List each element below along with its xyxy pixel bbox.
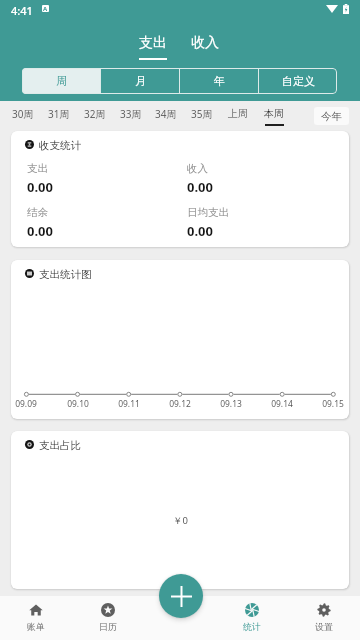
staticText: 09.11: [113, 398, 145, 410]
staticText: 30周: [12, 107, 34, 121]
staticText: 设置: [315, 621, 333, 632]
staticText: 本周: [264, 107, 284, 120]
button[interactable]: 34周: [155, 107, 177, 127]
button[interactable]: 日历: [72, 596, 144, 640]
staticText: 09.15: [317, 398, 349, 410]
staticText: 收支统计: [39, 139, 81, 152]
staticText: 月: [135, 74, 146, 88]
button[interactable]: 30周: [12, 107, 34, 127]
staticText: 31周: [48, 107, 70, 121]
button[interactable]: 月: [101, 68, 179, 94]
staticText: 09.13: [215, 398, 247, 410]
button[interactable]: 周: [22, 68, 100, 94]
staticText: 日均支出: [187, 206, 229, 219]
staticText: 支出: [27, 162, 48, 175]
staticText: 账单: [27, 621, 45, 632]
staticText: 4:41: [11, 3, 33, 18]
staticText: 统计: [243, 621, 261, 632]
staticText: 上周: [228, 107, 248, 120]
button[interactable]: 账单: [0, 596, 72, 640]
staticText: 0.00: [27, 178, 53, 196]
staticText: 支出统计图: [39, 268, 92, 281]
staticText: 结余: [27, 206, 48, 219]
staticText: 0.00: [187, 178, 213, 196]
button[interactable]: 年: [180, 68, 258, 94]
button[interactable]: 今年: [314, 107, 349, 125]
staticText: 收入: [187, 162, 208, 175]
button[interactable]: 支出: [136, 34, 170, 60]
staticText: 09.09: [11, 398, 42, 410]
button[interactable]: 31周: [48, 107, 70, 127]
staticText: 今年: [321, 110, 342, 123]
button[interactable]: 收支统计: [11, 131, 349, 247]
staticText: 34周: [155, 107, 177, 121]
staticText: 35周: [191, 107, 213, 121]
staticText: 0.00: [187, 222, 213, 240]
staticText: 自定义: [282, 74, 315, 88]
staticText: 0.00: [27, 222, 53, 240]
staticText: 收入: [191, 34, 219, 52]
button[interactable]: 收入: [188, 34, 222, 60]
button[interactable]: 35周: [191, 107, 213, 127]
staticText: 支出占比: [39, 439, 81, 452]
staticText: 32周: [84, 107, 106, 121]
button[interactable]: Add record: [159, 574, 203, 618]
staticText: 日历: [99, 621, 117, 632]
staticText: 周: [56, 74, 67, 88]
staticText: 年: [214, 74, 225, 88]
button[interactable]: 支出占比: [11, 431, 349, 589]
staticText: ￥0: [173, 514, 188, 527]
staticText: 09.12: [164, 398, 196, 410]
button[interactable]: 32周: [84, 107, 106, 127]
button[interactable]: 统计: [216, 596, 288, 640]
staticText: 支出: [139, 34, 167, 52]
button[interactable]: 设置: [288, 596, 360, 640]
staticText: 09.10: [62, 398, 94, 410]
button[interactable]: 本周: [263, 107, 285, 126]
button[interactable]: 33周: [120, 107, 142, 127]
staticText: A: [43, 5, 48, 12]
staticText: 09.14: [266, 398, 298, 410]
staticText: 33周: [120, 107, 142, 121]
button[interactable]: 上周: [227, 107, 249, 126]
button[interactable]: 自定义: [259, 68, 337, 94]
button[interactable]: 支出统计图: [11, 260, 349, 419]
